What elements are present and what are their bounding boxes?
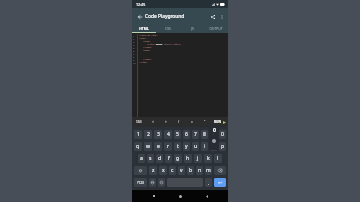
button[interactable]: 3 (154, 130, 162, 139)
button[interactable]: t (174, 142, 181, 151)
button[interactable]: v (178, 166, 185, 175)
staticText: u (194, 143, 198, 150)
button[interactable]: i (201, 142, 208, 151)
button[interactable]: 5 (174, 130, 181, 139)
button[interactable]: 1 (134, 130, 142, 139)
button[interactable]: " (198, 117, 211, 127)
button[interactable]: . (205, 178, 212, 187)
staticText: w (146, 143, 150, 150)
staticText: 5 (133, 46, 135, 49)
button[interactable]: 9 (210, 130, 217, 139)
staticText: > (165, 120, 167, 124)
button[interactable]: 2 (144, 130, 152, 139)
staticText: q (136, 143, 140, 150)
button[interactable]: u (192, 142, 199, 151)
staticText: JS (191, 26, 194, 30)
staticText: CSS (165, 26, 171, 30)
button[interactable] (214, 178, 226, 187)
staticText: 4 (167, 131, 170, 138)
staticText: c (171, 167, 174, 174)
staticText: k (207, 155, 210, 162)
staticText: " (204, 120, 206, 124)
button[interactable]: y (183, 142, 190, 151)
button[interactable]: w (144, 142, 152, 151)
button[interactable]: g (174, 154, 182, 163)
button[interactable]: f (165, 154, 172, 163)
button[interactable]: = (185, 117, 198, 127)
staticText: z (152, 167, 155, 174)
staticText: h (186, 155, 190, 162)
staticText: 2 (133, 37, 135, 40)
button[interactable]: 7 (192, 130, 199, 139)
staticText: OUTPUT (209, 26, 223, 30)
button[interactable]: x (159, 166, 167, 175)
staticText: HTML (139, 26, 149, 30)
staticText: </title> (171, 43, 182, 46)
button[interactable]: Share (208, 12, 217, 21)
staticText: <head> (143, 40, 151, 43)
button[interactable]: Back (135, 12, 144, 21)
button[interactable]: z (149, 166, 157, 175)
staticText: 9 (133, 58, 135, 61)
button[interactable]: OUTPUT (204, 24, 228, 33)
button[interactable]: 0 (219, 130, 226, 139)
button[interactable]: ?123 (134, 178, 147, 187)
button[interactable]: q (134, 142, 142, 151)
staticText: Hello (156, 43, 163, 46)
button[interactable]: k (204, 154, 212, 163)
button[interactable]: s (147, 154, 154, 163)
button[interactable]: c (169, 166, 176, 175)
button[interactable] (149, 178, 156, 187)
button[interactable] (214, 166, 226, 175)
staticText: l (217, 155, 219, 162)
button[interactable]: l (214, 154, 222, 163)
staticText: TAB (136, 120, 142, 124)
button[interactable] (158, 178, 165, 187)
staticText: <!DOCTYPE html> (139, 34, 158, 37)
button[interactable]: RUN (211, 117, 228, 127)
button[interactable]: d (156, 154, 163, 163)
button[interactable]: o (210, 142, 217, 151)
button[interactable]: Home (175, 191, 185, 201)
button[interactable]: CSS (156, 24, 180, 33)
button[interactable]: Back (202, 191, 212, 201)
button[interactable]: 8 (201, 130, 208, 139)
button[interactable]: a (138, 154, 145, 163)
button[interactable]: HTML (132, 24, 156, 33)
staticText: </head> (143, 46, 152, 49)
staticText: 2 (147, 131, 150, 138)
staticText: m (206, 167, 211, 174)
staticText: </body> (143, 58, 152, 61)
button[interactable]: 4 (164, 130, 172, 139)
button[interactable]: p (219, 142, 226, 151)
staticText: 3 (133, 40, 135, 43)
staticText: n (198, 167, 202, 174)
button[interactable]: r (164, 142, 172, 151)
button[interactable]: < (146, 117, 159, 127)
button[interactable]: / (172, 117, 185, 127)
staticText: a (140, 155, 143, 162)
button[interactable]: More options (217, 12, 226, 21)
button[interactable]: Recent apps (149, 191, 159, 201)
button[interactable]: JS (180, 24, 204, 33)
staticText: p (221, 143, 225, 150)
button[interactable]: 6 (183, 130, 190, 139)
staticText: Code Playground (145, 13, 185, 20)
staticText: v (180, 167, 183, 174)
button[interactable]: e (154, 142, 162, 151)
button[interactable]: b (187, 166, 194, 175)
staticText: <html> (139, 37, 147, 40)
button[interactable]: TAB (132, 117, 146, 127)
button[interactable]: h (184, 154, 192, 163)
button[interactable]: j (194, 154, 202, 163)
button[interactable]: > (159, 117, 172, 127)
staticText: 12:45 (136, 2, 146, 7)
button[interactable]: m (205, 166, 212, 175)
button[interactable]: n (196, 166, 203, 175)
staticText: = (191, 120, 193, 124)
staticText: 7 (194, 131, 197, 138)
staticText: 0 (213, 126, 216, 133)
button[interactable] (134, 166, 147, 175)
